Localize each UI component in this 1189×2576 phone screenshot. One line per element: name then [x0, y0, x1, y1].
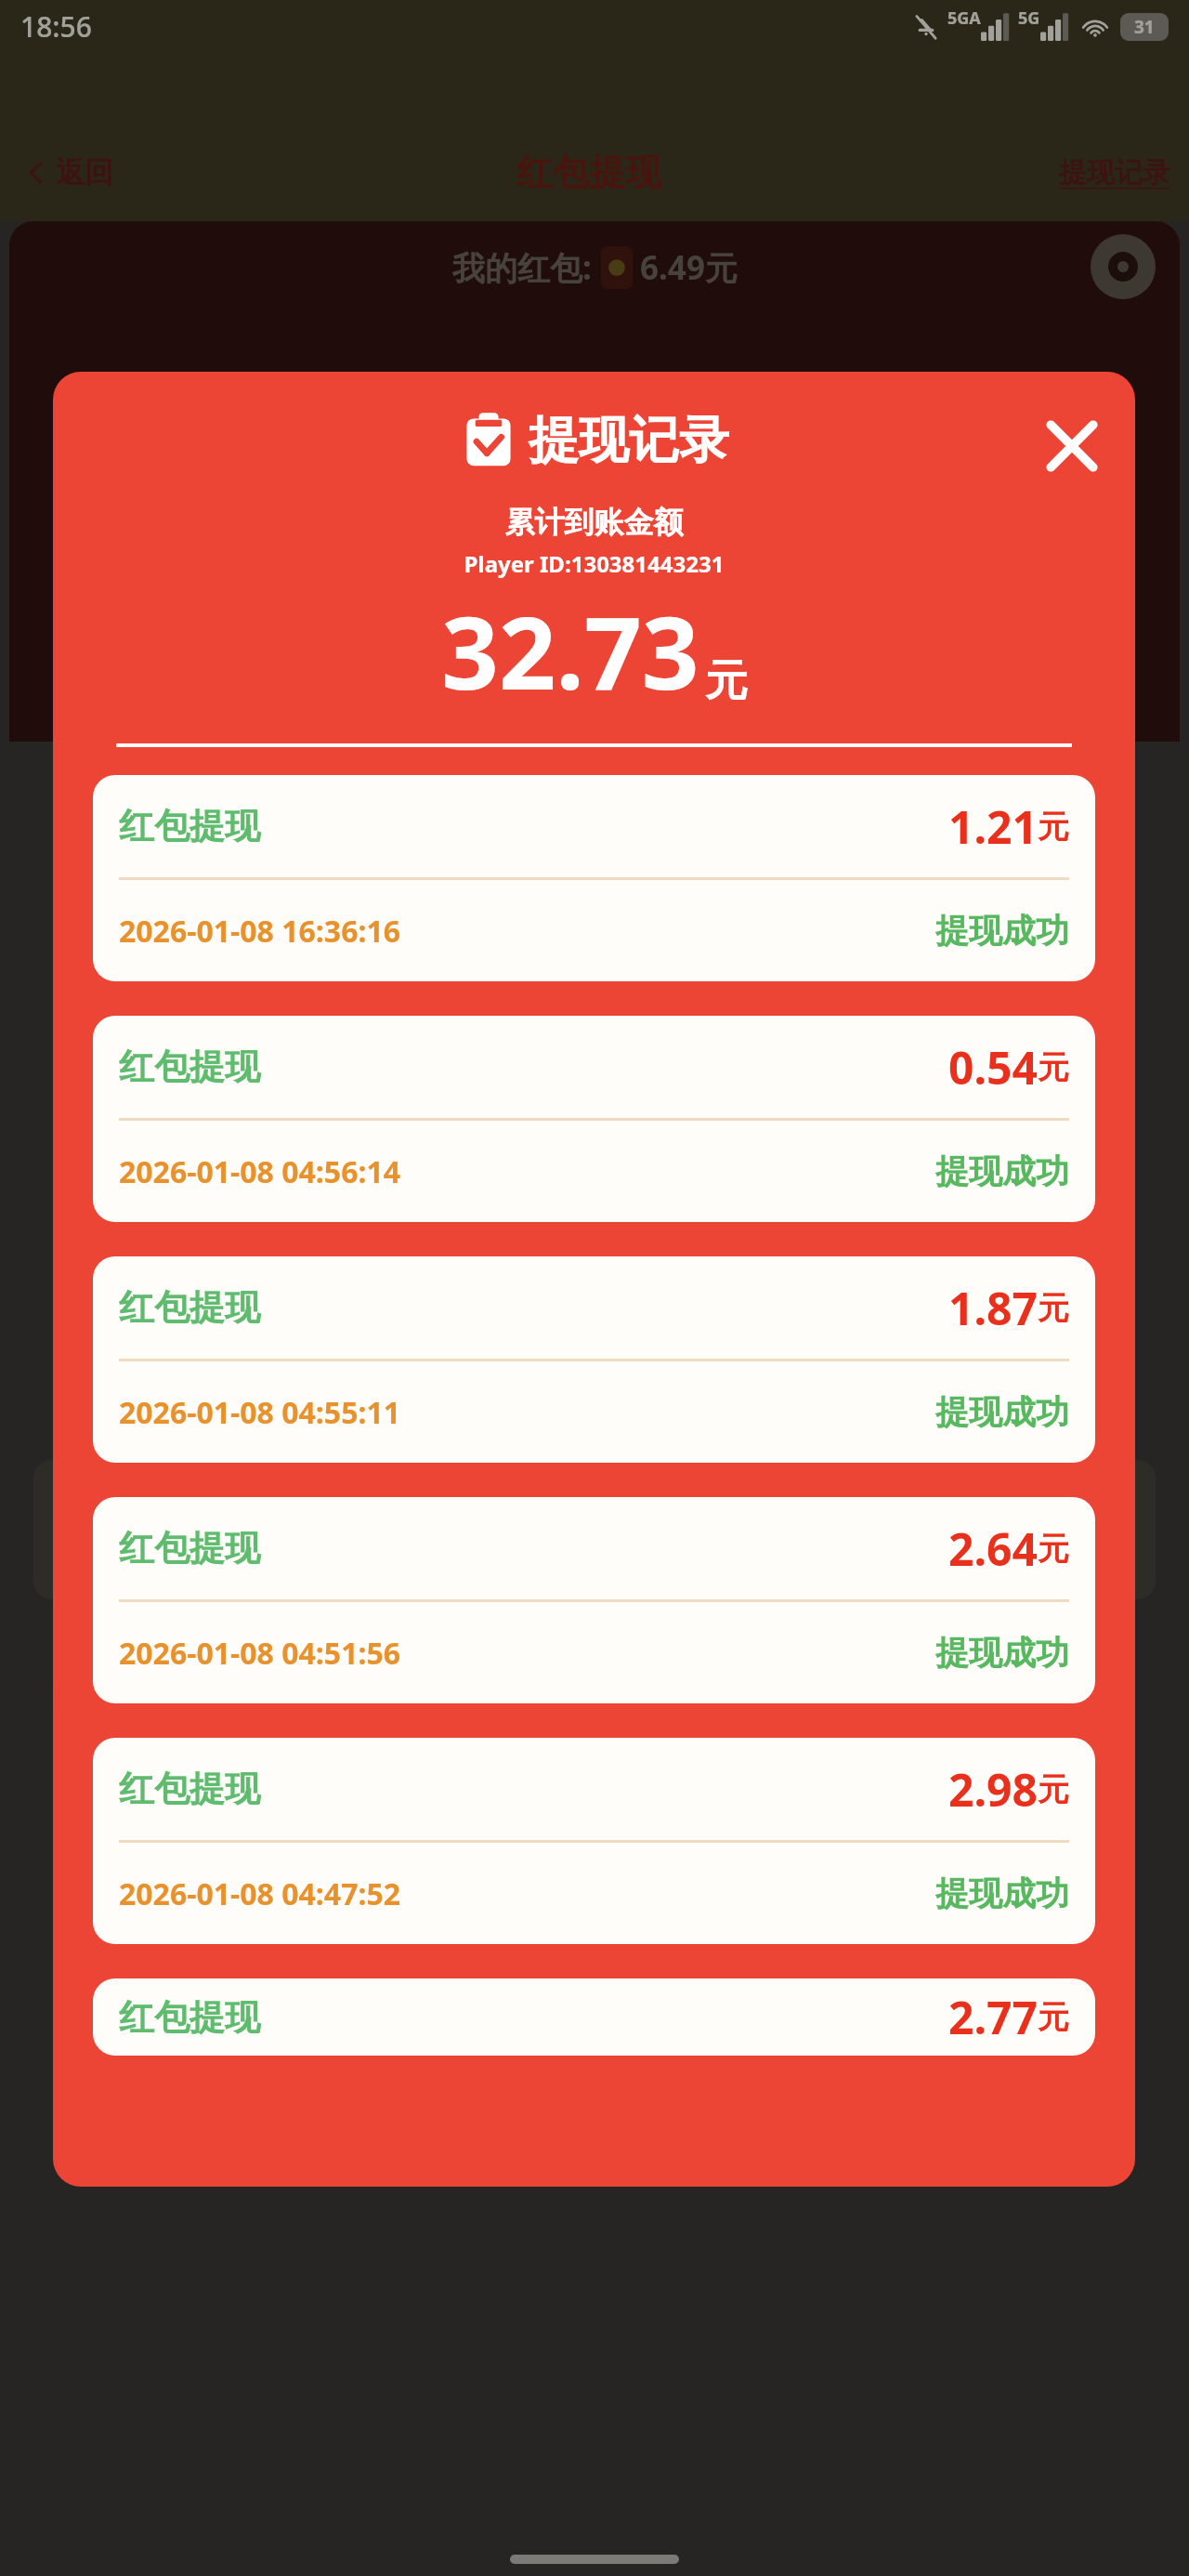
staticText: 10% — [165, 1460, 261, 1523]
staticText: 2026-01-08 04:56:14 — [119, 1151, 401, 1192]
button[interactable]: 红包提现 — [93, 1738, 1095, 1944]
button[interactable]: 提现记录 — [1059, 155, 1170, 191]
staticText: 提现成功 — [935, 1632, 1069, 1674]
button[interactable]: 10% — [33, 1460, 392, 1599]
staticText: 红包提现 — [119, 1767, 260, 1811]
staticText: 红包提现 — [119, 1526, 260, 1571]
staticText: 红包提现 — [119, 1995, 260, 2040]
staticText: 元 — [1038, 1529, 1069, 1569]
button[interactable]: 红包提现 — [93, 1978, 1095, 2056]
staticText: 我的红包: — [452, 245, 592, 290]
staticText: 50% — [546, 1460, 642, 1523]
staticText: 120% — [915, 1460, 1037, 1523]
staticText: 红包提现 — [516, 150, 661, 195]
staticText: 元 — [1038, 1997, 1069, 2037]
button[interactable]: Settings — [1091, 234, 1156, 299]
staticText: 32.73 — [441, 583, 699, 719]
staticText: 红包提现 — [119, 804, 260, 848]
button[interactable]: 50% — [414, 1460, 774, 1599]
button[interactable]: 红包提现 — [93, 1016, 1095, 1222]
button[interactable]: 120% — [796, 1460, 1156, 1599]
button[interactable]: 红包提现 — [93, 1497, 1095, 1703]
staticText: 提现记录 — [529, 409, 729, 472]
button[interactable]: 红包提现 — [93, 775, 1095, 981]
staticText: 红包提现 — [119, 1285, 260, 1330]
staticText: 提现说明： — [52, 1674, 205, 1713]
staticText: 可到账7.78元 — [904, 1557, 1049, 1590]
staticText: 元 — [1038, 1288, 1069, 1328]
staticText: 2.77 — [948, 1987, 1038, 2047]
staticText: 1.由于微信提现支付需要实名制，非实名用户账号无法支持提现，请务必对提现的微信号… — [52, 1733, 1137, 1823]
staticText: 18:56 — [20, 7, 92, 46]
button[interactable]: 返回 — [19, 149, 119, 196]
staticText: 返回 — [56, 154, 113, 191]
staticText: 提现成功 — [935, 910, 1069, 952]
staticText: 1.87 — [948, 1278, 1038, 1338]
staticText: 元 — [705, 654, 748, 708]
staticText: 2026-01-08 16:36:16 — [119, 911, 401, 952]
staticText: 2026-01-08 04:47:52 — [119, 1873, 401, 1914]
staticText: 元 — [1038, 1047, 1069, 1087]
staticText: 5GA — [947, 7, 981, 30]
staticText: 0.54 — [948, 1037, 1038, 1097]
staticText: 可到账0.64元 — [140, 1557, 285, 1590]
staticText: 6.49元 — [640, 245, 738, 290]
staticText: 2.98 — [948, 1759, 1038, 1820]
staticText: 2026-01-08 04:51:56 — [119, 1633, 401, 1674]
button[interactable]: 红包提现 — [93, 1256, 1095, 1463]
staticText: 红包提现 — [119, 1045, 260, 1089]
staticText: Player ID:130381443231 — [53, 548, 1135, 579]
staticText: 2026-01-08 04:55:11 — [119, 1392, 401, 1433]
staticText: 1.21 — [948, 796, 1038, 857]
staticText: 累计到账金额 — [53, 504, 1135, 541]
staticText: 提现成功 — [935, 1150, 1069, 1192]
button[interactable]: Close — [1035, 409, 1109, 483]
staticText: 元 — [1038, 1769, 1069, 1809]
staticText: 提现成功 — [935, 1873, 1069, 1914]
staticText: 提现成功 — [935, 1391, 1069, 1433]
staticText: 元 — [1038, 807, 1069, 847]
staticText: 31 — [1134, 15, 1155, 39]
staticText: 2.64 — [948, 1518, 1038, 1579]
staticText: 5G — [1018, 7, 1040, 30]
